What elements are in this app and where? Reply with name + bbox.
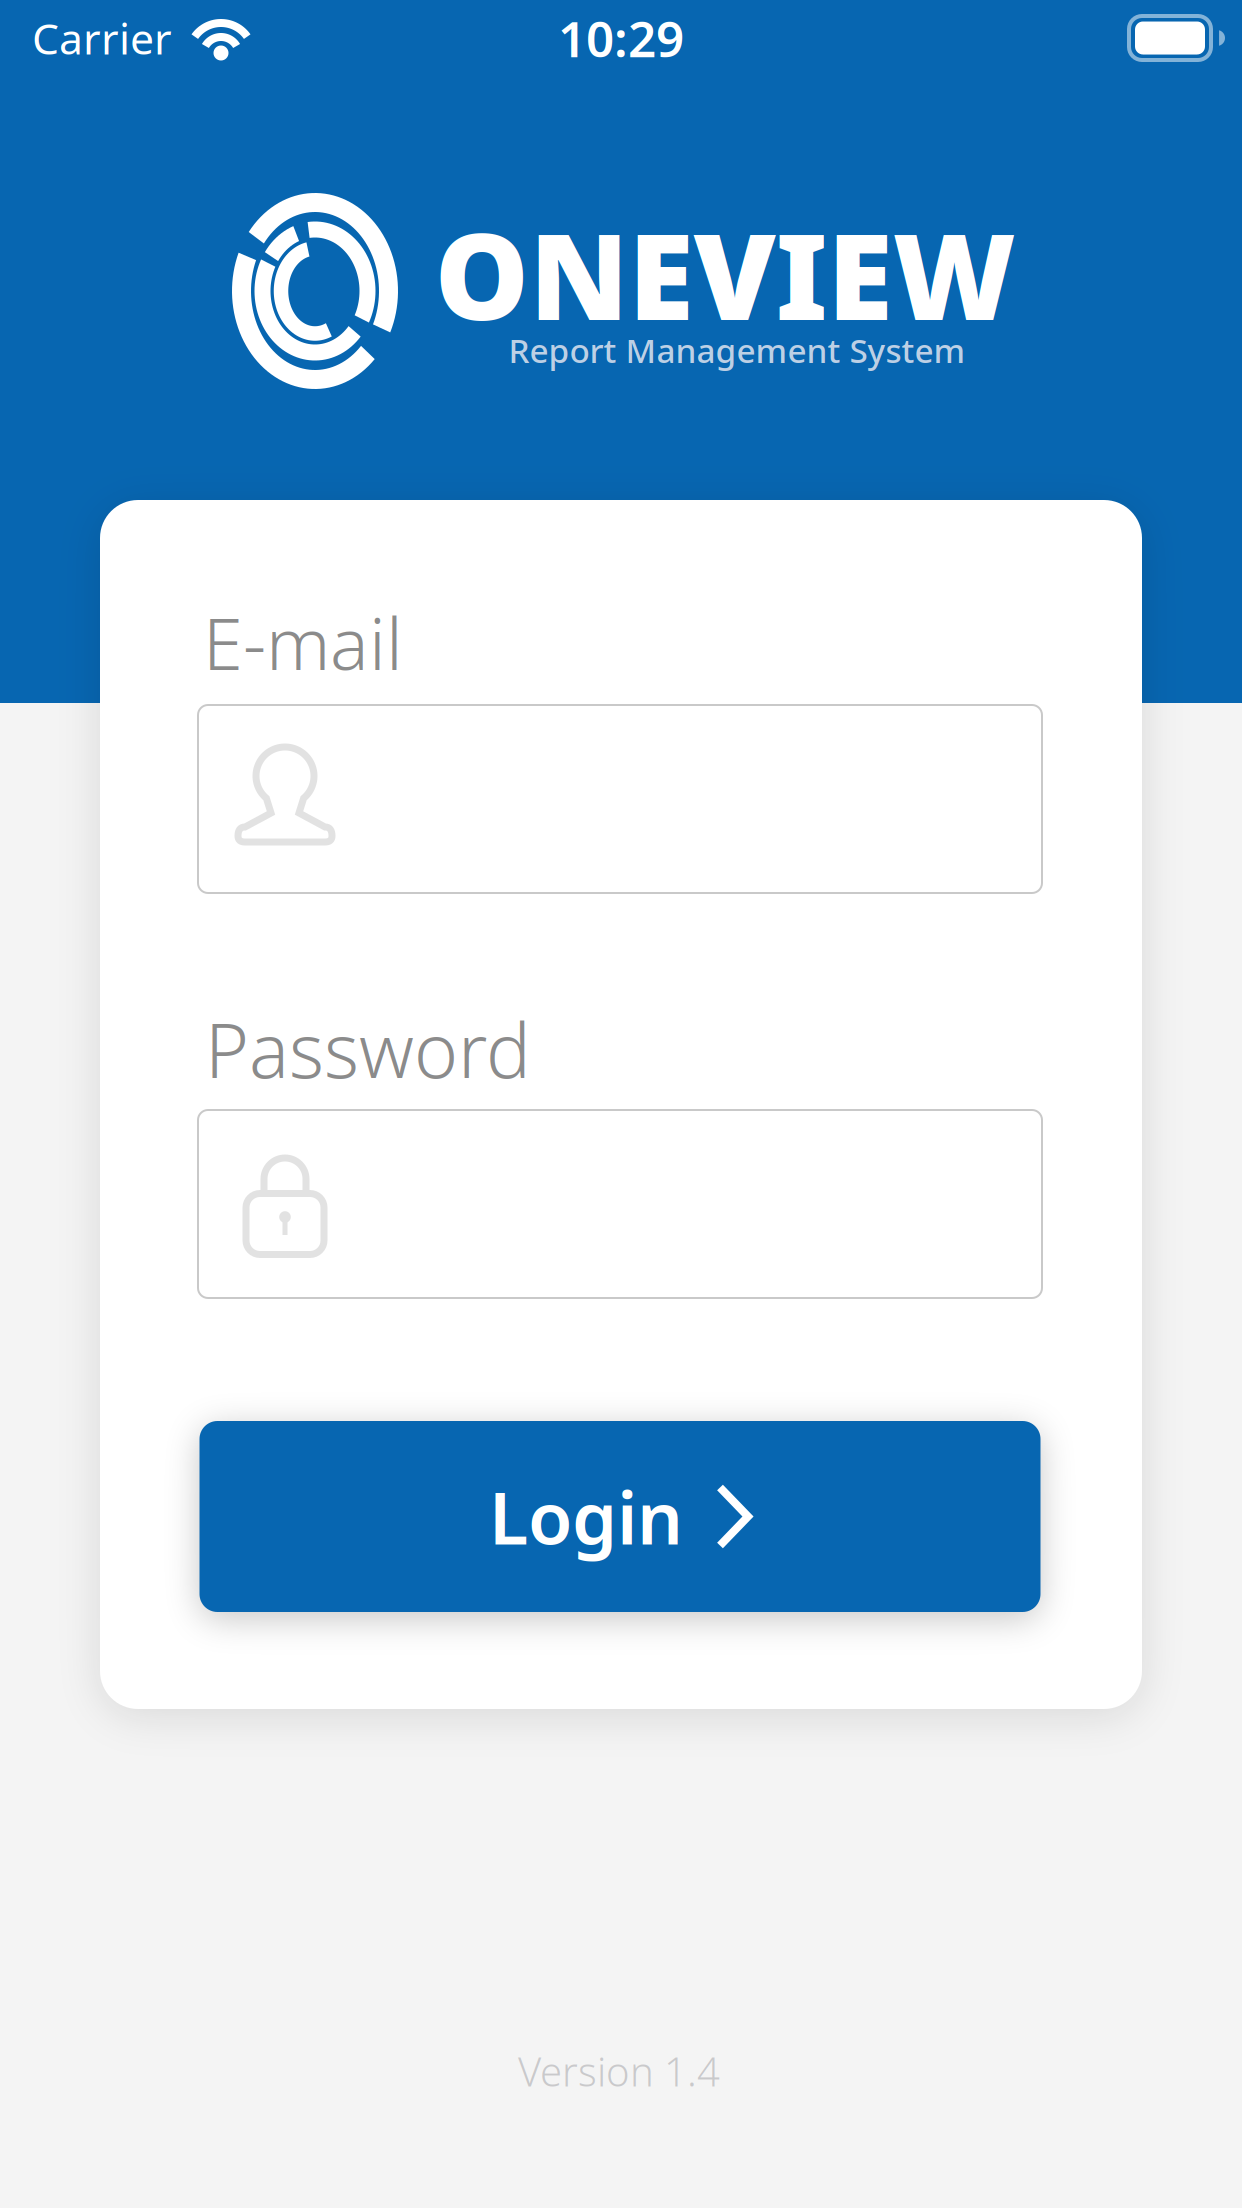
staticText: ONEVIEW — [434, 195, 1015, 353]
button[interactable]: E-mail — [198, 705, 1042, 893]
staticText: Carrier — [32, 10, 172, 66]
button[interactable]: Password — [198, 1110, 1042, 1298]
button[interactable]: Login — [199, 1421, 1040, 1612]
staticText: Login — [489, 1469, 683, 1564]
staticText: Report Management System — [508, 328, 965, 372]
staticText: 10:29 — [558, 5, 684, 71]
staticText: Password — [205, 999, 531, 1099]
staticText: Version 1.4 — [518, 2044, 720, 2097]
staticText: E-mail — [203, 594, 403, 690]
